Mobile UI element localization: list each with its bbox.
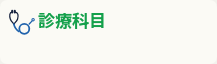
- button[interactable]: Medical departments: [0, 0, 217, 64]
- staticText: 診療科目: [38, 7, 106, 32]
- other: Medical departments: [0, 0, 217, 64]
